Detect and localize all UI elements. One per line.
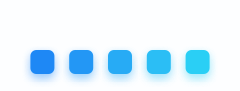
button[interactable]: Page 5	[186, 50, 210, 74]
button[interactable]: Page 3	[108, 50, 132, 74]
button[interactable]: Page 1	[30, 50, 54, 74]
button[interactable]: Page 4	[147, 50, 171, 74]
button[interactable]: Page 2	[69, 50, 93, 74]
